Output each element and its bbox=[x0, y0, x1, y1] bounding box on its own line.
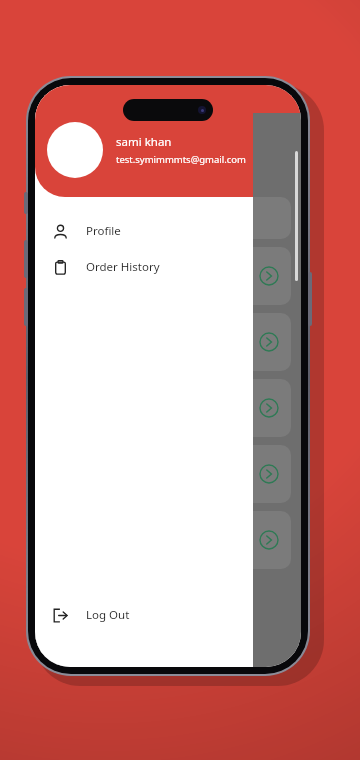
button[interactable]: Profile bbox=[35, 213, 253, 249]
staticText: Order History bbox=[86, 259, 160, 275]
staticText: Log Out bbox=[86, 607, 130, 623]
other: Log Out bbox=[53, 608, 68, 623]
staticText: Profile bbox=[86, 223, 121, 239]
other: Order History bbox=[53, 260, 68, 275]
other: Profile bbox=[53, 224, 68, 239]
staticText: Rs. 565 bbox=[57, 261, 98, 277]
staticText: Order bbox=[59, 209, 96, 227]
button[interactable]: Log Out bbox=[35, 597, 253, 633]
staticText: test.symimmmts@gmail.com bbox=[116, 153, 246, 166]
staticText: sami khan bbox=[116, 134, 172, 150]
button[interactable]: Order History bbox=[35, 249, 253, 285]
